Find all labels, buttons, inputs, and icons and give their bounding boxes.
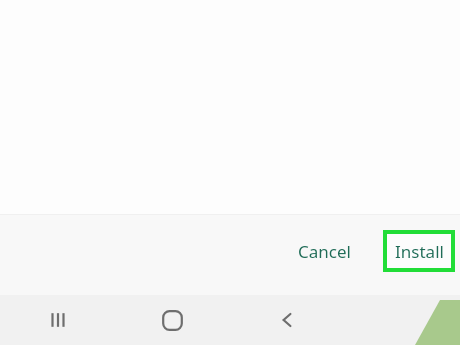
button[interactable]: Home [115, 295, 230, 345]
button[interactable]: Back [230, 295, 345, 345]
button[interactable]: Recent apps [0, 295, 115, 345]
button[interactable]: Cancel [288, 232, 361, 271]
staticText: Install [395, 240, 444, 263]
staticText: Cancel [298, 240, 351, 263]
button[interactable]: Install [387, 234, 451, 268]
